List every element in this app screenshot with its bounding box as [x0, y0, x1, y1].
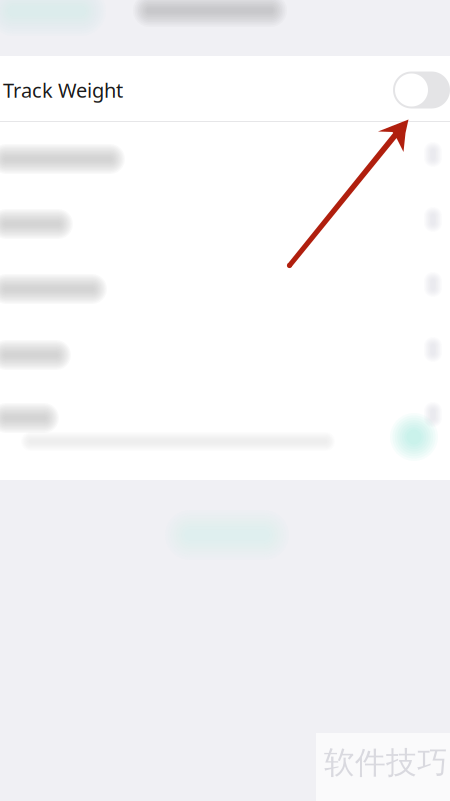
- button[interactable]: Track Weight: [0, 57, 450, 123]
- staticText: 软件技巧: [324, 744, 448, 782]
- staticText: Track Weight: [3, 77, 123, 103]
